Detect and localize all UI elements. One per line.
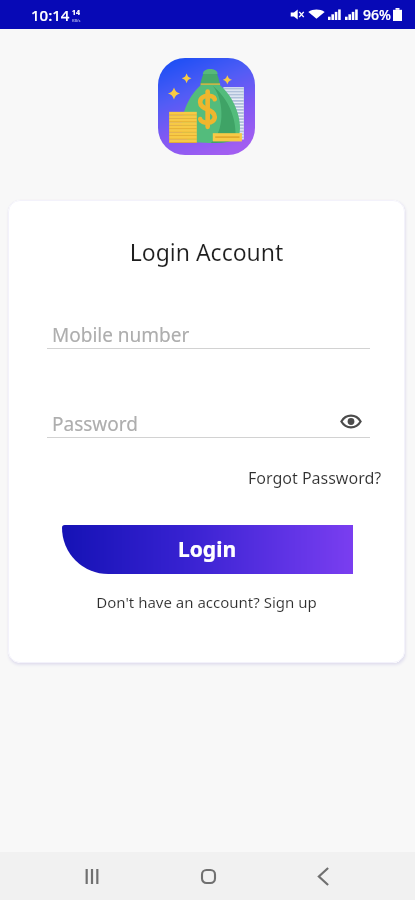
button[interactable]: Show password	[337, 411, 370, 437]
staticText: Login	[178, 535, 237, 564]
staticText: 96%	[363, 5, 391, 24]
button[interactable]: Password	[52, 411, 337, 437]
button[interactable]: Login	[62, 525, 353, 574]
staticText: Forgot Password?	[248, 467, 382, 489]
button[interactable]: Recent apps	[68, 852, 116, 900]
button[interactable]: Don't have an account? Sign up	[8, 592, 405, 612]
button[interactable]: Back	[299, 852, 347, 900]
staticText: 14	[72, 8, 81, 18]
staticText: Login Account	[8, 236, 405, 267]
button[interactable]: Mobile number	[52, 322, 370, 348]
staticText: 10:14	[31, 5, 70, 25]
staticText: KB/s	[72, 18, 81, 23]
button[interactable]: Forgot Password?	[8, 467, 382, 489]
button[interactable]: Home	[184, 852, 232, 900]
